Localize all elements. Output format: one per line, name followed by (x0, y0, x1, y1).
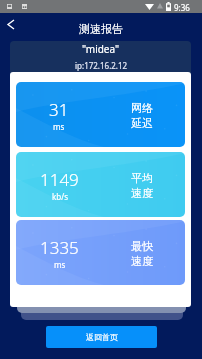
button[interactable]: 31 (16, 82, 185, 147)
staticText: 31 (49, 98, 69, 121)
staticText: 速度 (131, 186, 153, 200)
staticText: ip:172.16.2.12 (75, 60, 128, 71)
button[interactable]: 1335 (16, 220, 185, 285)
staticText: 最快 (131, 239, 153, 253)
staticText: 返回首页 (86, 332, 118, 342)
staticText: 1335 (40, 236, 79, 259)
staticText: 速度 (131, 254, 153, 268)
staticText: 9:36 (174, 2, 190, 13)
staticText: ms (53, 121, 65, 132)
button[interactable]: 1149 (16, 152, 185, 217)
staticText: kb/s (52, 191, 68, 202)
button[interactable]: Back (0, 13, 22, 35)
staticText: "midea" (82, 42, 120, 56)
staticText: 平均 (131, 171, 153, 185)
staticText: 网络 (131, 101, 153, 115)
button[interactable]: 返回首页 (46, 326, 157, 348)
staticText: 测速报告 (79, 22, 123, 36)
staticText: 延迟 (131, 116, 153, 130)
staticText: ms (54, 259, 66, 270)
staticText: 1149 (40, 168, 79, 191)
